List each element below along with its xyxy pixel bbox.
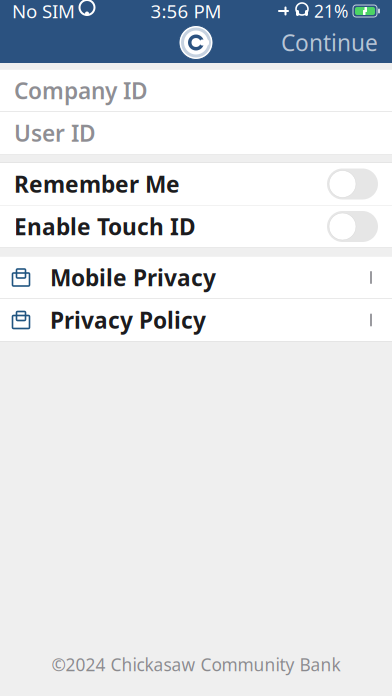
button[interactable]: Remember Me: [0, 163, 392, 205]
staticText: 3:56 PM: [150, 0, 221, 23]
staticText: User ID: [14, 118, 96, 148]
staticText: Remember Me: [14, 169, 180, 199]
staticText: ©2024 Chickasaw Community Bank: [51, 653, 340, 676]
staticText: Enable Touch ID: [14, 211, 196, 241]
staticText: Continue: [281, 27, 378, 57]
staticText: 21%: [314, 0, 348, 22]
staticText: Privacy Policy: [50, 305, 206, 335]
button[interactable]: Privacy Policy: [0, 299, 392, 341]
staticText: No SIM: [12, 0, 75, 23]
button[interactable]: Mobile Privacy: [0, 256, 392, 298]
button[interactable]: Enable Touch ID: [0, 205, 392, 247]
button[interactable]: Continue: [267, 19, 392, 65]
staticText: Company ID: [14, 75, 148, 105]
staticText: Mobile Privacy: [50, 262, 216, 292]
